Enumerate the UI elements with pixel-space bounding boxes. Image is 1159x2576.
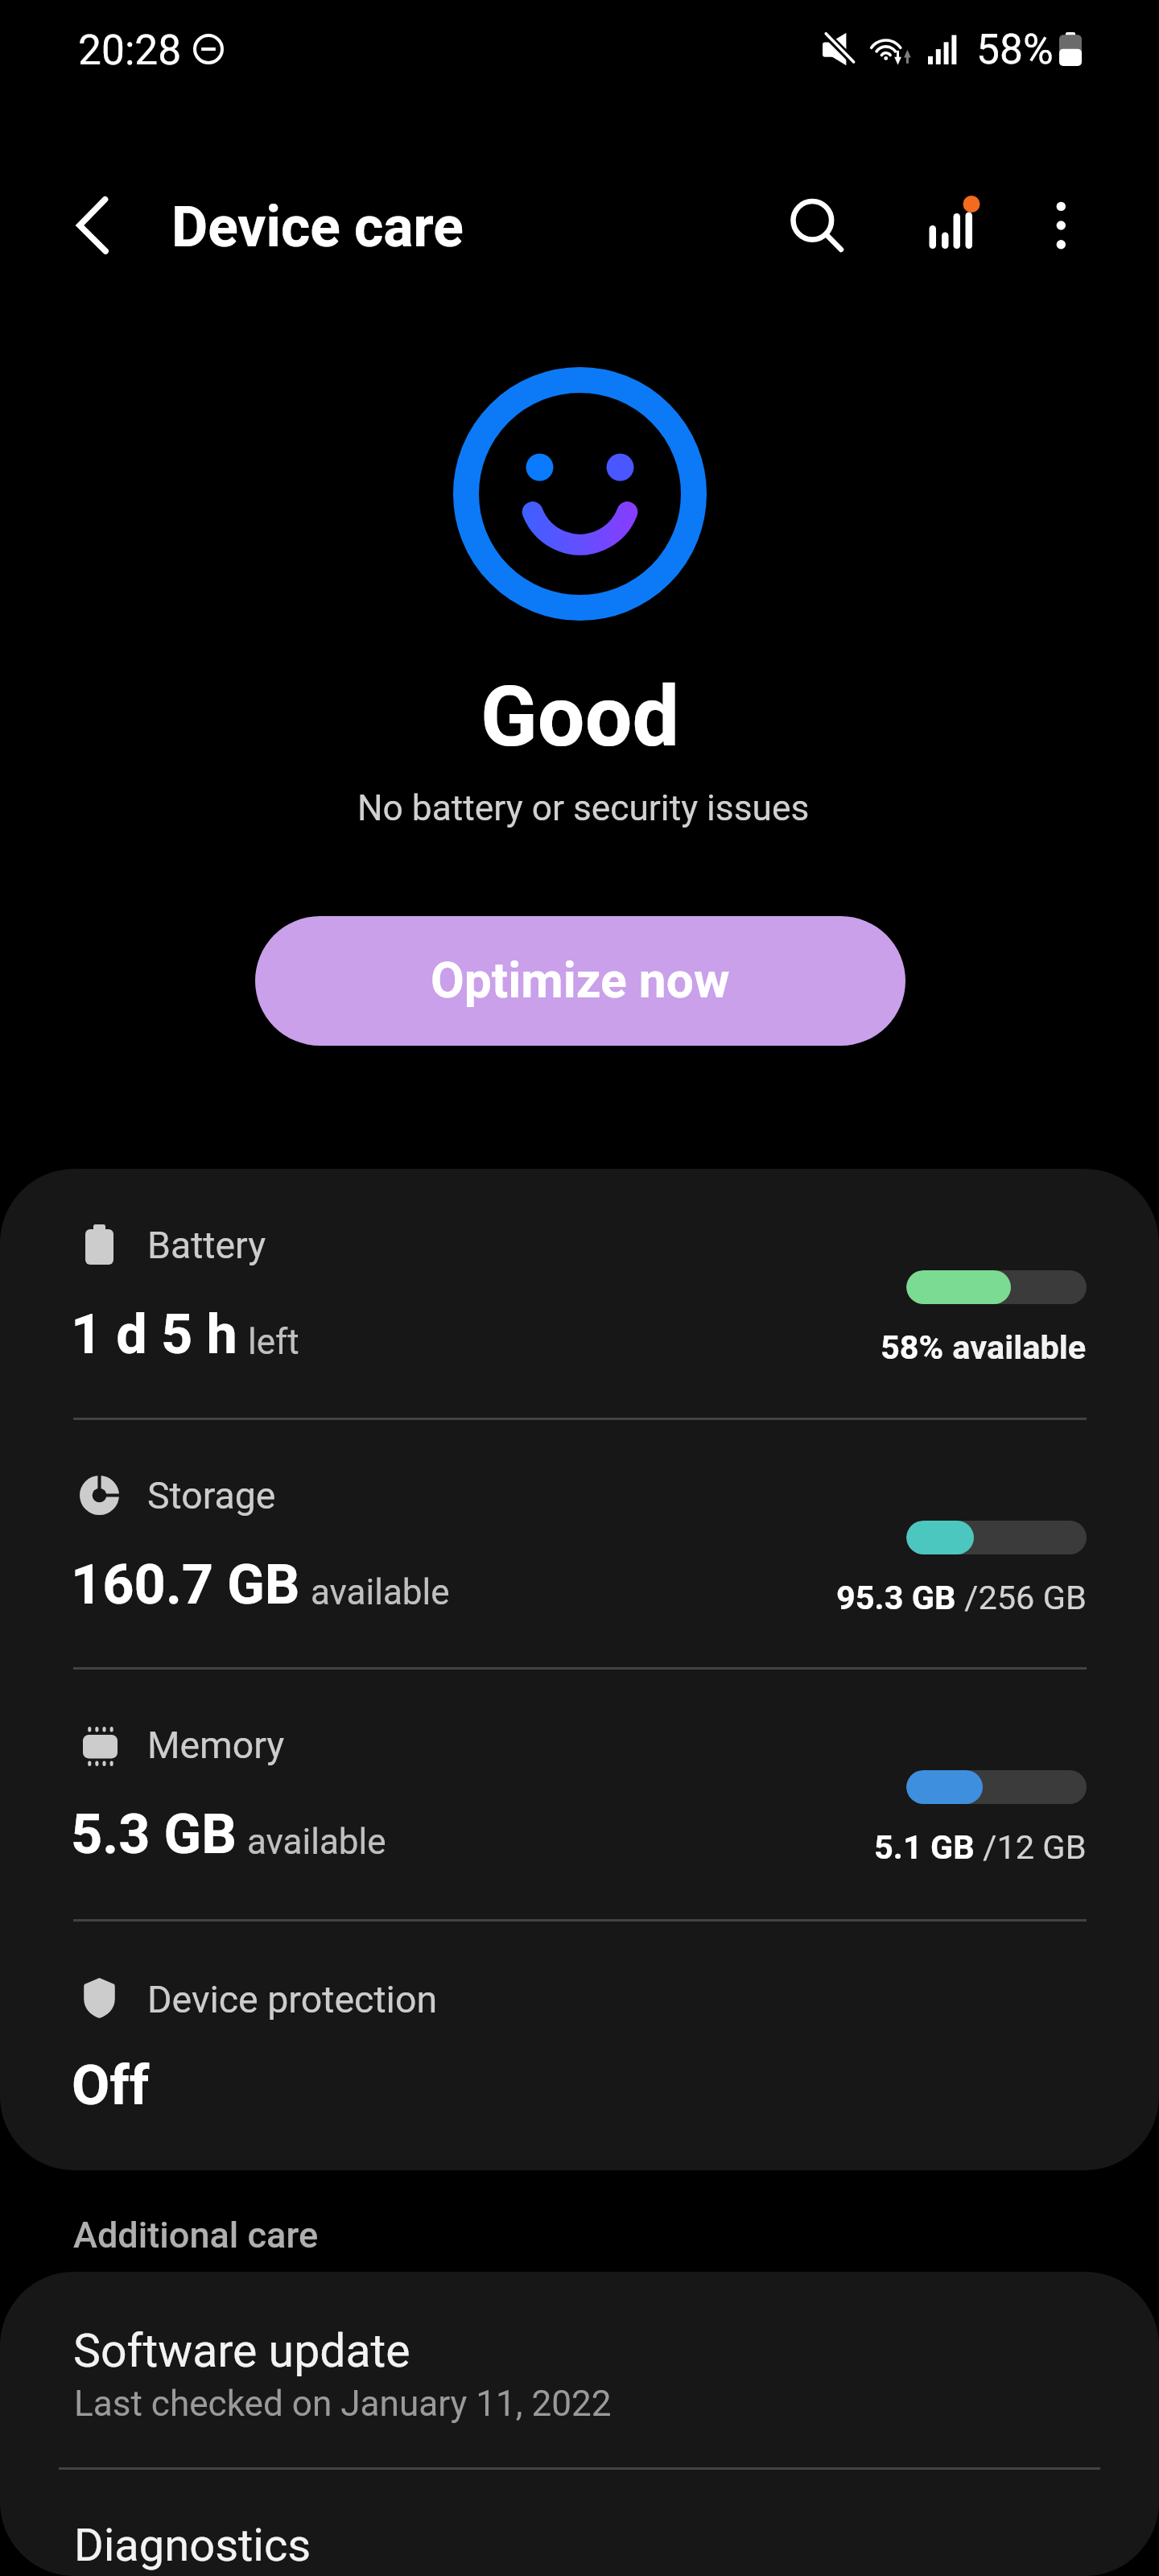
staticText: 58% <box>881 1327 944 1367</box>
staticText: 58% <box>976 25 1054 73</box>
button[interactable]: Optimize now <box>255 916 905 1046</box>
staticText: available <box>944 1327 1087 1367</box>
staticText: 5.1 GB <box>874 1827 975 1867</box>
staticText: No battery or security issues <box>357 787 810 829</box>
staticText: Device care <box>171 195 464 260</box>
button[interactable]: Battery <box>0 1169 1159 1418</box>
button[interactable]: Storage <box>0 1419 1159 1669</box>
button[interactable]: Device protection <box>0 1921 1159 2170</box>
staticText: Storage <box>147 1474 276 1517</box>
staticText: Last checked on January 11, 2022 <box>74 2383 612 2425</box>
staticText: Additional care <box>73 2214 319 2256</box>
staticText: Optimize now <box>431 952 730 1009</box>
button[interactable]: More options <box>1016 180 1106 270</box>
staticText: /12 GB <box>975 1827 1087 1867</box>
staticText: Software update <box>73 2324 410 2378</box>
staticText: 20:28 <box>78 26 182 74</box>
staticText: left <box>248 1321 299 1363</box>
button[interactable]: Diagnostics <box>0 2470 1159 2576</box>
staticText: Diagnostics <box>74 2519 311 2572</box>
staticText: available <box>311 1571 450 1613</box>
button[interactable]: Memory <box>0 1669 1159 1918</box>
staticText: /256 GB <box>956 1578 1087 1617</box>
staticText: Battery <box>147 1224 266 1267</box>
button[interactable]: Navigate up <box>60 180 150 270</box>
staticText: available <box>247 1821 386 1863</box>
staticText: Off <box>72 2053 150 2117</box>
staticText: 1 d 5 h <box>71 1302 237 1366</box>
staticText: 95.3 GB <box>836 1578 956 1617</box>
button[interactable]: Software update <box>0 2272 1159 2469</box>
button[interactable]: Usage statistics <box>906 180 996 270</box>
button[interactable]: Search <box>767 175 857 266</box>
staticText: Device protection <box>147 1978 438 2021</box>
staticText: 5.3 GB <box>71 1802 237 1866</box>
staticText: Memory <box>147 1724 285 1767</box>
staticText: 160.7 GB <box>71 1552 300 1616</box>
staticText: Good <box>481 668 680 766</box>
